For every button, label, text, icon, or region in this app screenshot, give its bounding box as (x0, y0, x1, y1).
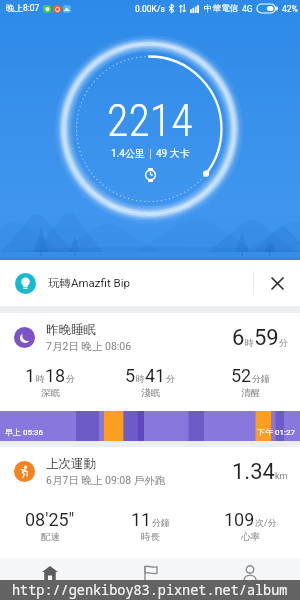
staticText: 109 (224, 509, 255, 530)
button[interactable]: 早上 05:36 (0, 411, 300, 441)
staticText: 早上 05:36 (5, 427, 43, 437)
staticText: 時 (245, 337, 254, 348)
staticText: 次/分 (255, 517, 277, 528)
staticText: 4G (242, 4, 253, 14)
staticText: 2214 (107, 95, 193, 147)
staticText: 41 (145, 365, 166, 386)
staticText: 清醒 (241, 387, 260, 399)
staticText: 49 大卡 (156, 147, 190, 160)
staticText: 時長 (141, 531, 160, 543)
staticText: 52 (231, 365, 252, 386)
staticText: 08'25" (25, 509, 75, 530)
button[interactable]: Close (254, 260, 300, 306)
staticText: 昨晚睡眠 (46, 322, 96, 338)
staticText: 分 (66, 373, 75, 384)
button[interactable]: Profile (200, 558, 300, 580)
staticText: 6 (232, 325, 245, 351)
staticText: 深眠 (41, 387, 60, 399)
staticText: 時 (136, 373, 145, 384)
staticText: 1.4公里 (111, 147, 145, 160)
staticText: 上次運動 (46, 456, 96, 472)
staticText: 0.00K/s (135, 4, 165, 14)
staticText: 配速 (41, 531, 60, 543)
staticText: 心率 (241, 531, 260, 543)
staticText: 淺眠 (141, 387, 160, 399)
other: Watch (145, 168, 156, 182)
staticText: 1 (25, 365, 36, 386)
button[interactable]: Home (0, 558, 100, 580)
staticText: 59 (254, 325, 279, 351)
button[interactable]: Discover (100, 558, 200, 580)
staticText: 6月7日 晚上 09:08 戶外跑 (46, 474, 166, 487)
staticText: 分 (166, 373, 175, 384)
staticText: 時 (36, 373, 45, 384)
staticText: km (275, 471, 288, 482)
button[interactable]: 上次運動 (0, 447, 300, 543)
staticText: 玩轉Amazfit Bip (48, 276, 130, 290)
staticText: 晚上8:07 (6, 3, 40, 14)
staticText: 1.34 (232, 459, 275, 485)
button[interactable]: 昨晚睡眠 (0, 313, 300, 441)
staticText: 18 (45, 365, 66, 386)
staticText: 下午 01:27 (257, 427, 295, 437)
staticText: http://genkiboy83.pixnet.net/album (12, 581, 288, 599)
staticText: 分鐘 (252, 373, 270, 384)
staticText: 中華電信 (204, 3, 238, 14)
staticText: 分鐘 (152, 517, 170, 528)
staticText: 分 (279, 337, 288, 348)
staticText: 7月2日 晚上 08:06 (46, 340, 132, 353)
staticText: 42% (282, 4, 298, 14)
staticText: 5 (125, 365, 136, 386)
button[interactable]: 玩轉Amazfit Bip (0, 260, 300, 306)
staticText: 11 (131, 509, 152, 530)
